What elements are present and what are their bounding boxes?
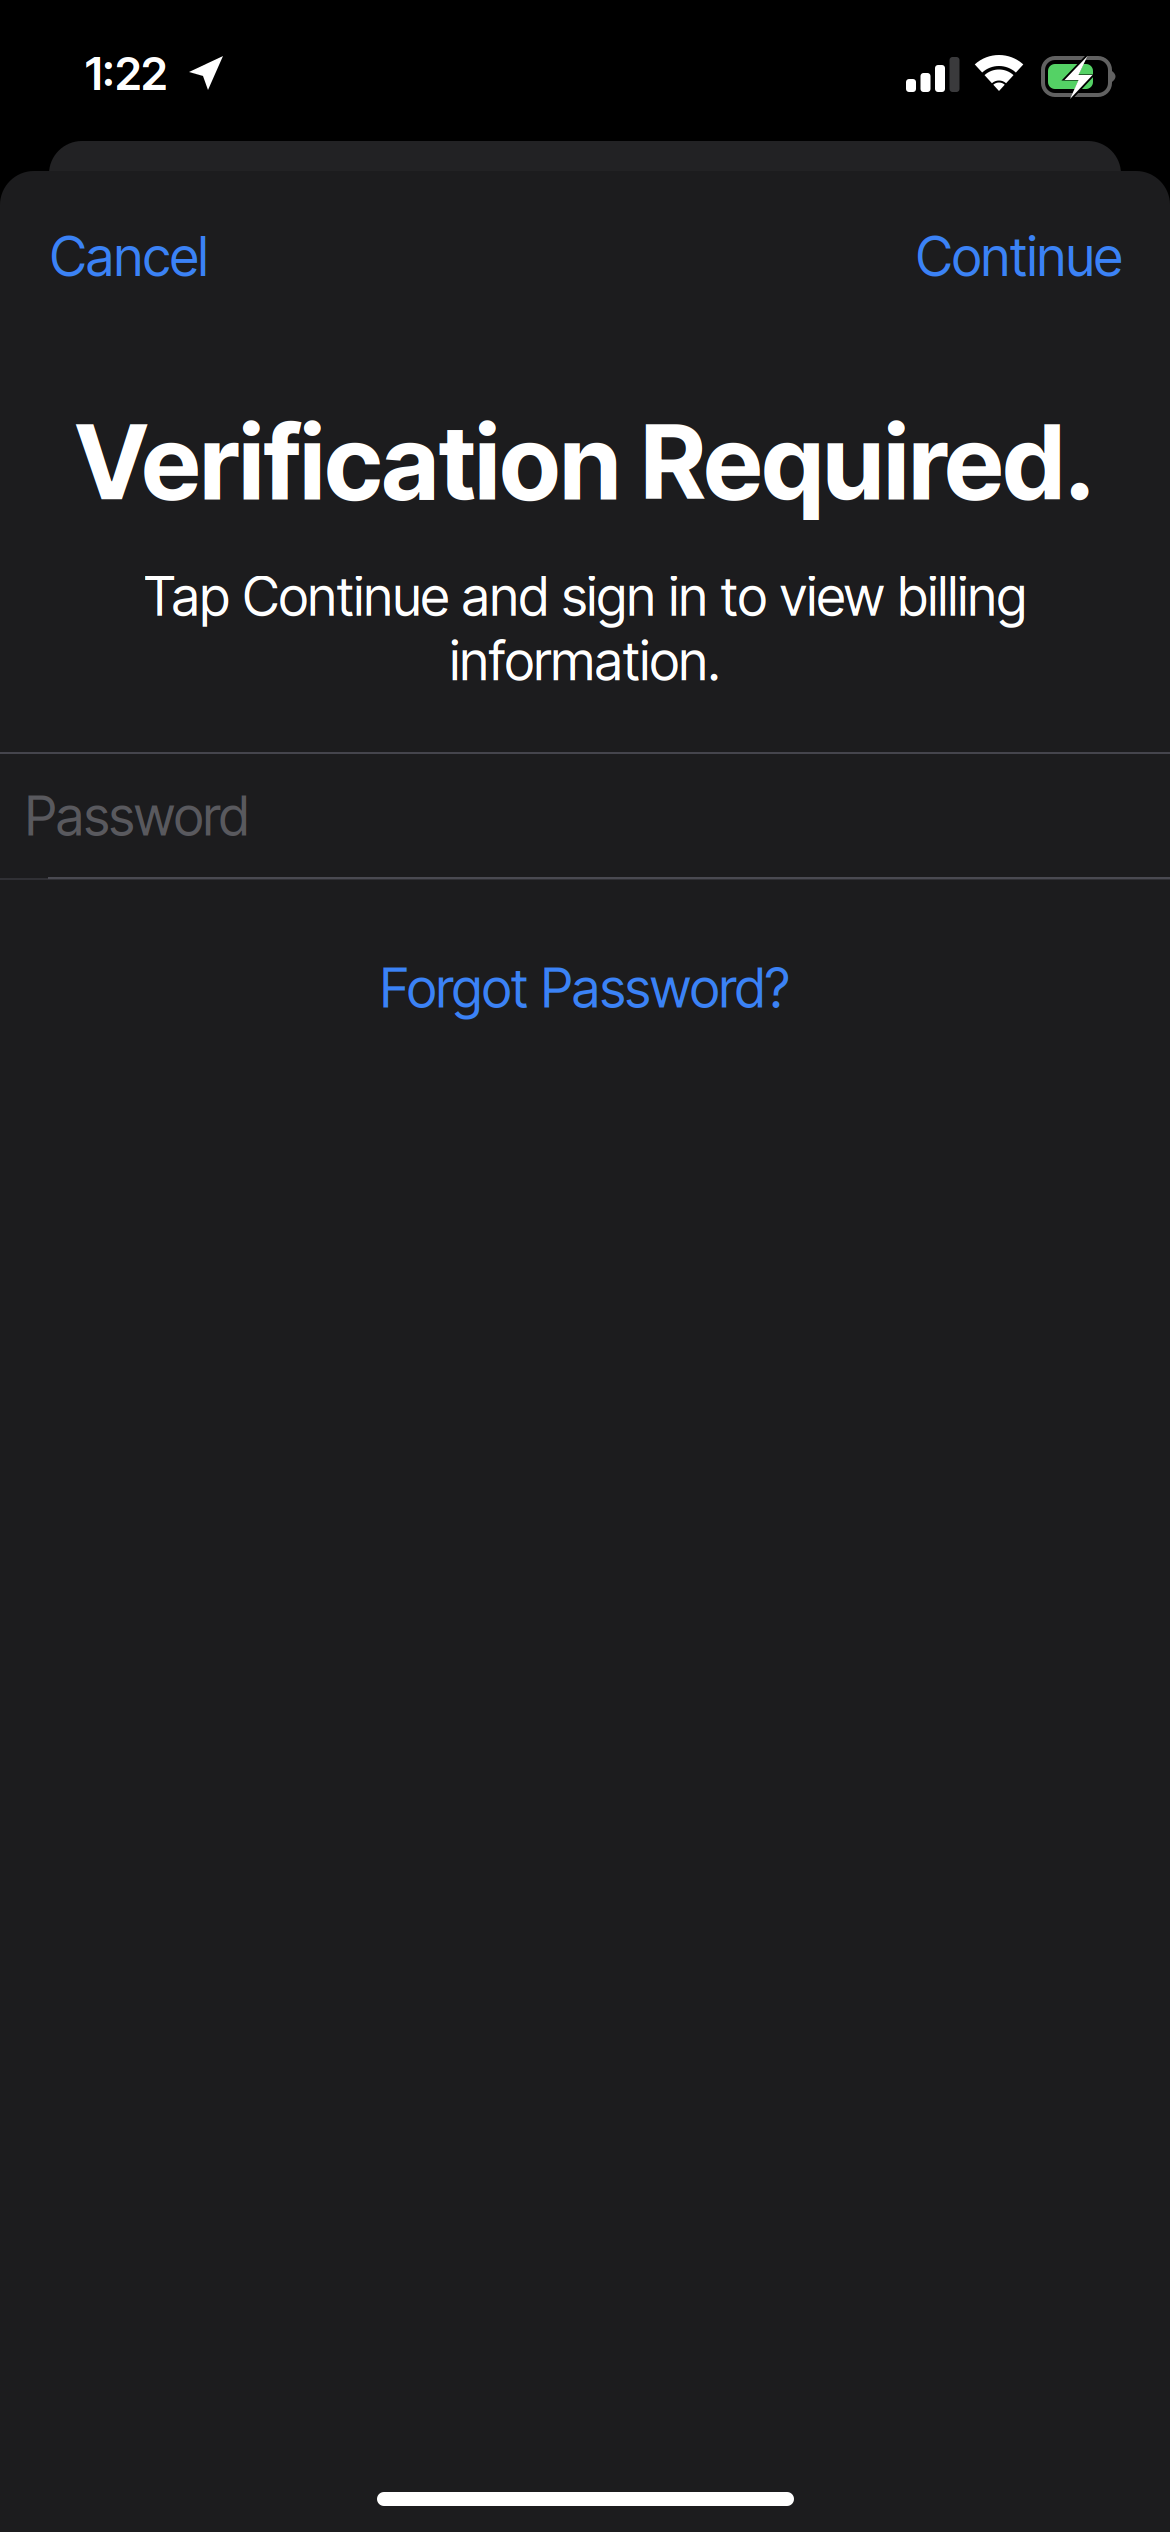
staticText: Tap Continue and sign in to view billing… [143, 564, 1026, 693]
staticText: Verification Required. [75, 400, 1095, 524]
staticText: Cancel [50, 224, 208, 289]
button[interactable]: Forgot Password? [0, 932, 1170, 1044]
staticText: Forgot Password? [380, 956, 790, 1020]
staticText: 1:22 [85, 46, 167, 101]
button[interactable]: Cancel [50, 171, 330, 342]
button[interactable]: Password [0, 754, 1170, 878]
staticText: Continue [916, 224, 1122, 289]
staticText: Password [25, 784, 249, 848]
button[interactable]: Continue [842, 171, 1122, 342]
